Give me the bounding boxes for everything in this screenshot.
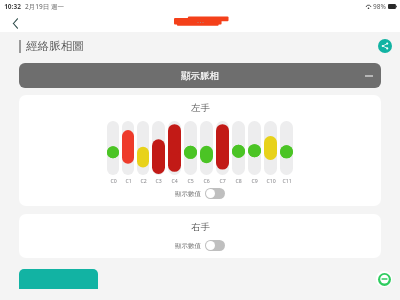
staticText: C5 <box>187 177 194 184</box>
staticText: 右手 <box>191 221 210 233</box>
button[interactable] <box>152 121 165 175</box>
button[interactable] <box>248 121 261 175</box>
button[interactable]: 左手 <box>19 95 381 206</box>
button[interactable] <box>200 121 213 175</box>
button[interactable] <box>137 121 149 175</box>
staticText: C0 <box>110 177 117 184</box>
button[interactable]: Share <box>378 39 392 53</box>
staticText: 顯示數值 <box>175 190 201 198</box>
staticText: C6 <box>203 177 210 184</box>
button[interactable]: 右手 <box>19 214 381 258</box>
button[interactable] <box>122 121 134 175</box>
staticText: C9 <box>251 177 258 184</box>
button[interactable]: LINE chat <box>376 271 392 287</box>
button[interactable] <box>280 121 293 175</box>
staticText: C7 <box>219 177 226 184</box>
button[interactable]: 顯示脈相 <box>19 63 381 88</box>
staticText: C4 <box>171 177 178 184</box>
staticText: 左手 <box>191 102 210 114</box>
staticText: 98% <box>373 2 386 11</box>
button[interactable] <box>184 121 197 175</box>
staticText: C3 <box>155 177 162 184</box>
staticText: 顯示脈相 <box>181 70 219 82</box>
staticText: C10 <box>266 177 276 184</box>
button[interactable] <box>232 121 245 175</box>
button[interactable]: Back <box>4 14 26 32</box>
button[interactable] <box>107 121 119 175</box>
button[interactable]: 顯示數值 <box>171 239 229 252</box>
staticText: 2月19日 週一 <box>25 2 64 11</box>
staticText: C1 <box>125 177 132 184</box>
button[interactable] <box>264 121 277 175</box>
staticText: 10:32 <box>4 2 21 11</box>
staticText: 顯示數值 <box>175 242 201 250</box>
staticText: C8 <box>235 177 242 184</box>
staticText: • • • <box>197 20 204 25</box>
button[interactable]: 顯示數值 <box>171 187 229 200</box>
button[interactable] <box>19 269 98 289</box>
button[interactable] <box>168 121 181 175</box>
button[interactable] <box>216 121 229 175</box>
staticText: C2 <box>140 177 147 184</box>
staticText: C11 <box>282 177 292 184</box>
staticText: 經絡脈相圖 <box>26 39 84 53</box>
